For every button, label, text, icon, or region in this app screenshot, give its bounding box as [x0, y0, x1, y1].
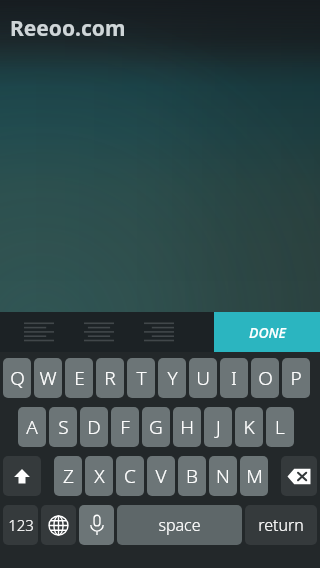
staticText: V — [155, 463, 167, 489]
button[interactable]: return — [245, 505, 317, 545]
staticText: R — [104, 365, 116, 391]
button[interactable]: Voice input — [79, 505, 114, 545]
staticText: X — [94, 463, 105, 489]
staticText: G — [149, 414, 163, 440]
staticText: E — [74, 365, 85, 391]
staticText: T — [136, 365, 147, 391]
button[interactable]: Shift — [3, 456, 41, 496]
staticText: D — [87, 414, 101, 440]
button[interactable]: DONE — [214, 312, 320, 352]
button[interactable]: O — [251, 358, 279, 398]
button[interactable]: E — [65, 358, 93, 398]
button[interactable]: L — [266, 407, 294, 447]
button[interactable]: T — [127, 358, 155, 398]
staticText: S — [58, 414, 69, 440]
staticText: B — [186, 463, 198, 489]
button[interactable]: Align left — [16, 312, 62, 352]
staticText: J — [216, 414, 221, 440]
button[interactable]: Backspace — [281, 456, 317, 496]
staticText: return — [258, 514, 304, 536]
staticText: space — [158, 514, 201, 536]
button[interactable]: Z — [54, 456, 82, 496]
button[interactable]: B — [178, 456, 206, 496]
staticText: W — [39, 365, 57, 391]
staticText: K — [243, 414, 255, 440]
button[interactable]: R — [96, 358, 124, 398]
staticText: C — [124, 463, 136, 489]
staticText: H — [180, 414, 194, 440]
button[interactable]: space — [117, 505, 242, 545]
button[interactable]: S — [49, 407, 77, 447]
button[interactable]: 123 — [3, 505, 38, 545]
button[interactable]: Y — [158, 358, 186, 398]
staticText: Y — [167, 365, 178, 391]
button[interactable]: W — [34, 358, 62, 398]
button[interactable]: U — [189, 358, 217, 398]
button[interactable]: M — [240, 456, 268, 496]
button[interactable]: F — [111, 407, 139, 447]
staticText: L — [275, 414, 285, 440]
staticText: 123 — [8, 515, 34, 535]
button[interactable]: X — [85, 456, 113, 496]
button[interactable]: H — [173, 407, 201, 447]
button[interactable]: I — [220, 358, 248, 398]
staticText: DONE — [249, 323, 286, 342]
staticText: N — [216, 463, 230, 489]
button[interactable]: G — [142, 407, 170, 447]
button[interactable]: Change keyboard — [41, 505, 76, 545]
staticText: Reeoo.com — [10, 14, 126, 43]
button[interactable]: Align center — [76, 312, 122, 352]
staticText: M — [246, 463, 263, 489]
button[interactable]: K — [235, 407, 263, 447]
button[interactable]: D — [80, 407, 108, 447]
button[interactable]: J — [204, 407, 232, 447]
button[interactable]: P — [282, 358, 310, 398]
staticText: Q — [10, 365, 25, 391]
button[interactable]: Q — [3, 358, 31, 398]
staticText: A — [26, 414, 38, 440]
staticText: U — [196, 365, 210, 391]
button[interactable]: A — [18, 407, 46, 447]
button[interactable]: Align right — [136, 312, 182, 352]
button[interactable]: N — [209, 456, 237, 496]
staticText: P — [290, 365, 302, 391]
staticText: I — [231, 365, 237, 391]
button[interactable]: V — [147, 456, 175, 496]
staticText: F — [120, 414, 130, 440]
staticText: Z — [63, 463, 74, 489]
button[interactable]: C — [116, 456, 144, 496]
staticText: O — [258, 365, 273, 391]
